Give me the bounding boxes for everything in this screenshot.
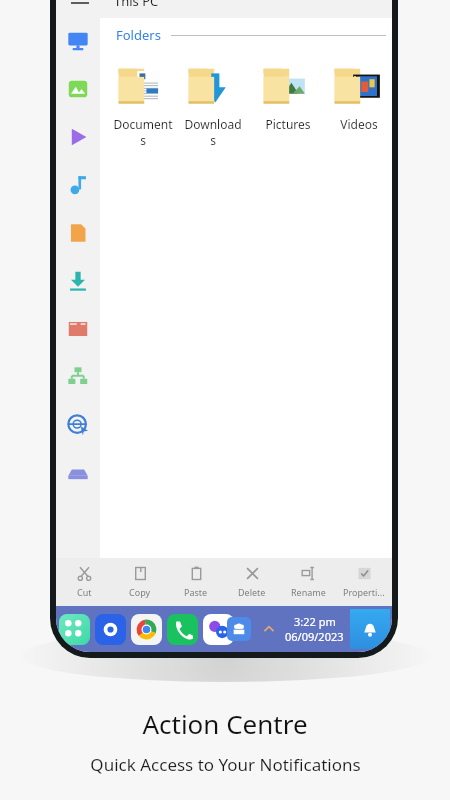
button[interactable]: Properti...: [336, 558, 392, 606]
staticText: Pictures: [257, 116, 319, 132]
button[interactable]: Documents: [110, 56, 175, 148]
staticText: Videos: [328, 116, 390, 132]
button[interactable]: Paste: [168, 558, 224, 606]
staticText: Quick Access to Your Notifications: [90, 753, 361, 776]
button[interactable]: Chrome: [131, 614, 162, 645]
button[interactable]: Downloads: [175, 56, 250, 148]
staticText: This PC: [114, 0, 159, 10]
staticText: Properti...: [343, 586, 385, 598]
button[interactable]: People: [227, 617, 251, 641]
staticText: Cut: [77, 586, 92, 598]
button[interactable]: Downloads: [65, 268, 91, 294]
staticText: 3:22 pm: [294, 614, 336, 629]
staticText: Folders: [116, 26, 161, 44]
button[interactable]: Pictures: [250, 56, 325, 132]
staticText: 06/09/2023: [285, 629, 344, 644]
button[interactable]: Messages: [203, 614, 234, 645]
staticText: Downloads: [182, 116, 244, 148]
button[interactable]: Videos: [65, 124, 91, 150]
staticText: Rename: [291, 586, 326, 598]
button[interactable]: Rename: [280, 558, 336, 606]
button[interactable]: Videos: [325, 56, 392, 132]
button[interactable]: Drive: [65, 460, 91, 486]
button[interactable]: Music: [65, 172, 91, 198]
button[interactable]: Pictures: [65, 76, 91, 102]
button[interactable]: This PC: [65, 28, 91, 54]
button[interactable]: Browser: [95, 614, 126, 645]
button[interactable]: Copy: [112, 558, 168, 606]
button[interactable]: Apps: [65, 316, 91, 342]
button[interactable]: Cut: [56, 558, 112, 606]
button[interactable]: Phone: [167, 614, 198, 645]
staticText: Action Centre: [142, 706, 308, 741]
button[interactable]: Menu: [64, 0, 96, 14]
button[interactable]: Show hidden icons: [260, 620, 278, 638]
staticText: Delete: [238, 586, 266, 598]
staticText: Copy: [129, 586, 151, 598]
staticText: Documents: [112, 116, 174, 148]
button[interactable]: Notifications: [350, 609, 390, 649]
button[interactable]: Documents: [65, 220, 91, 246]
staticText: Paste: [184, 586, 208, 598]
button[interactable]: Delete: [224, 558, 280, 606]
button[interactable]: Start: [59, 614, 90, 645]
button[interactable]: Web: [65, 412, 91, 438]
button[interactable]: Network: [65, 364, 91, 390]
